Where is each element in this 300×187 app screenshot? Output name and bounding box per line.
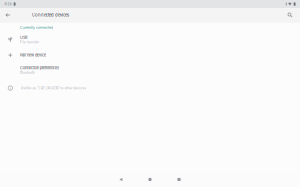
staticText: Connected devices: [32, 12, 69, 18]
staticText: Visible as "LGE LM-X210" to other device…: [21, 86, 87, 90]
button[interactable]: Search: [282, 8, 298, 22]
button[interactable]: Connection preferences: [0, 62, 300, 79]
button[interactable]: Back: [0, 8, 16, 22]
button[interactable]: Recent apps: [164, 172, 193, 187]
staticText: Connection preferences: [20, 66, 59, 70]
staticText: USB: [20, 35, 27, 40]
button[interactable]: Back: [106, 172, 135, 187]
staticText: Bluetooth: [20, 71, 35, 74]
staticText: File transfer: [20, 40, 39, 44]
staticText: 8:24: [5, 2, 12, 6]
button[interactable]: Home: [135, 172, 164, 187]
staticText: Pair new device: [20, 53, 46, 57]
staticText: Currently connected: [20, 25, 53, 30]
button[interactable]: Pair new device: [0, 49, 300, 62]
button[interactable]: USB: [0, 31, 300, 49]
